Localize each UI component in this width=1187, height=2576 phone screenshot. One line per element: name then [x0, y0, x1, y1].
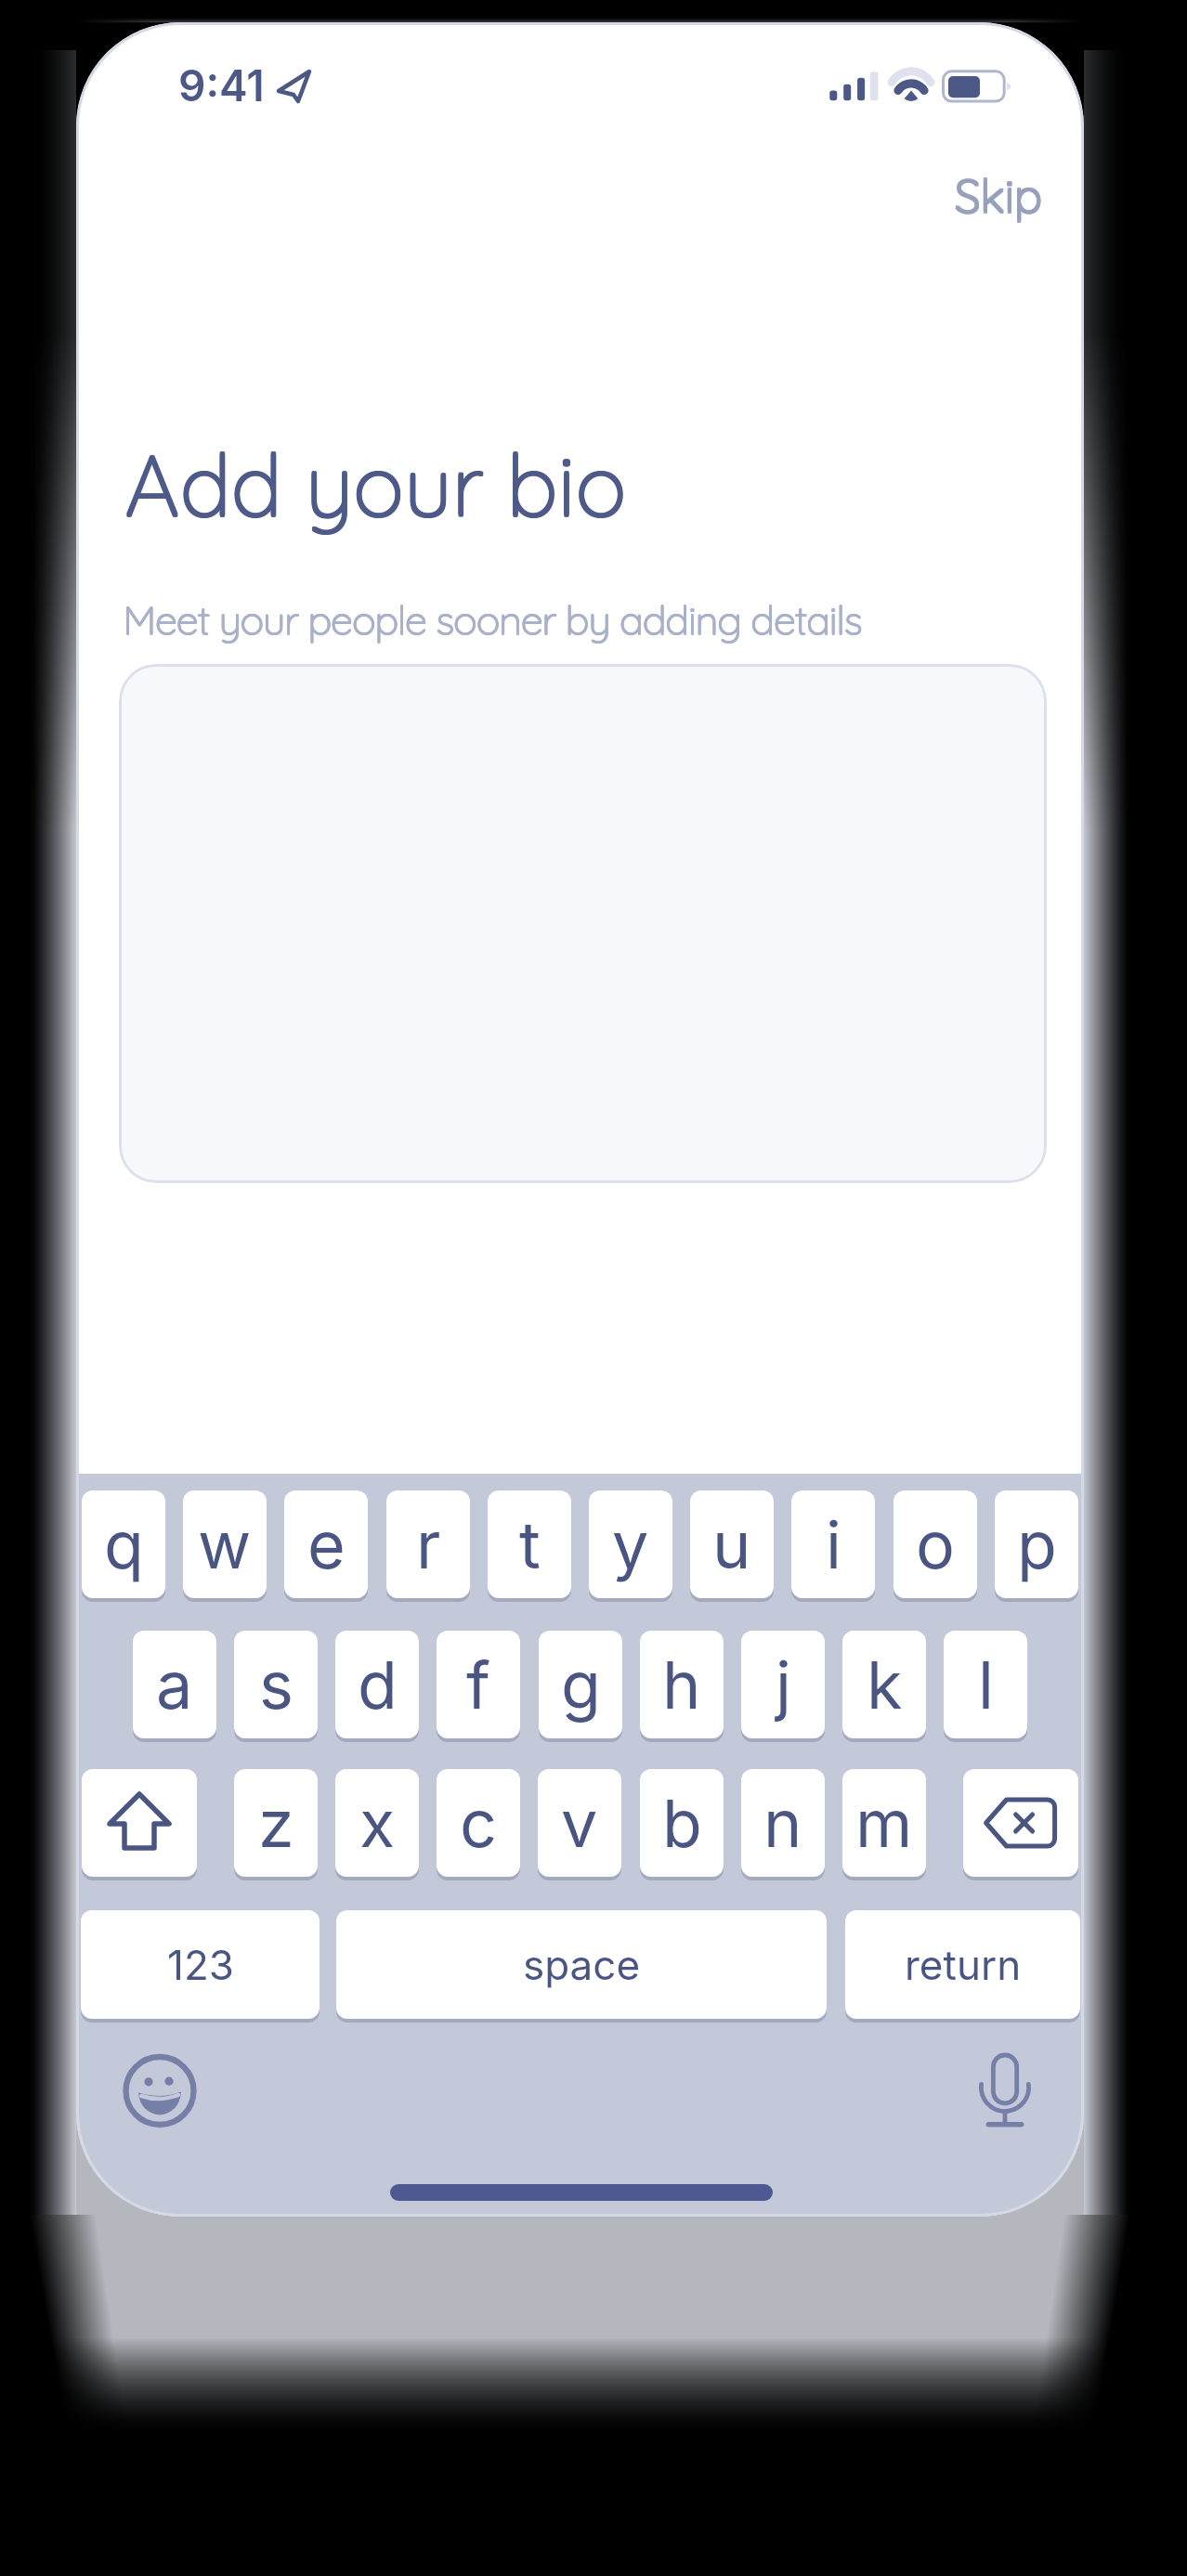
staticText: x: [359, 1784, 396, 1863]
staticText: Add your bio: [124, 432, 626, 539]
staticText: l: [978, 1646, 994, 1724]
staticText: Meet your people sooner by adding detail…: [123, 595, 862, 645]
staticText: y: [612, 1505, 649, 1584]
staticText: k: [867, 1646, 903, 1724]
staticText: p: [1017, 1505, 1057, 1584]
staticText: b: [662, 1784, 702, 1863]
staticText: c: [460, 1784, 497, 1863]
staticText: f: [466, 1646, 490, 1724]
staticText: e: [307, 1505, 346, 1584]
staticText: t: [519, 1505, 541, 1584]
staticText: Add your bio: [124, 430, 626, 537]
staticText: r: [416, 1505, 441, 1584]
staticText: w: [198, 1505, 252, 1584]
staticText: s: [259, 1646, 293, 1724]
staticText: Skip: [954, 165, 1041, 224]
staticText: space: [523, 1940, 641, 1989]
staticText: z: [258, 1784, 294, 1863]
staticText: Skip: [956, 165, 1043, 224]
staticText: d: [358, 1646, 398, 1724]
staticText: u: [712, 1505, 751, 1584]
staticText: a: [156, 1646, 193, 1724]
staticText: Meet your people sooner by adding detail…: [124, 595, 863, 645]
staticText: v: [561, 1784, 598, 1863]
staticText: j: [776, 1646, 791, 1724]
staticText: Add your bio: [125, 430, 628, 537]
staticText: g: [561, 1646, 601, 1724]
staticText: i: [826, 1505, 841, 1584]
staticText: return: [905, 1940, 1022, 1989]
staticText: n: [763, 1784, 802, 1863]
staticText: o: [916, 1505, 955, 1584]
staticText: Skip: [956, 167, 1043, 226]
staticText: q: [104, 1505, 144, 1584]
staticText: 123: [167, 1940, 234, 1989]
staticText: 9:41: [178, 59, 265, 108]
staticText: m: [855, 1784, 913, 1863]
staticText: Skip: [954, 167, 1041, 226]
staticText: Add your bio: [125, 432, 628, 539]
staticText: h: [662, 1646, 701, 1724]
staticText: Meet your people sooner by adding detail…: [123, 594, 862, 644]
staticText: Meet your people sooner by adding detail…: [124, 594, 863, 644]
